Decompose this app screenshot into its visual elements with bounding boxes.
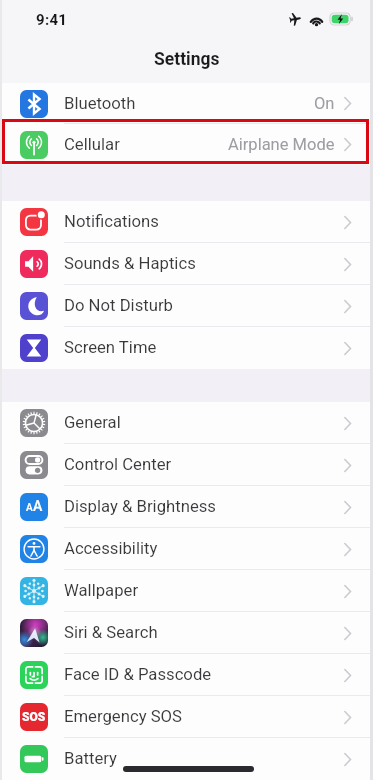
button[interactable]: Notifications: [0, 201, 373, 243]
staticText: Battery: [64, 749, 117, 769]
button[interactable]: General: [0, 402, 373, 444]
staticText: 9:41: [36, 11, 68, 29]
button[interactable]: Accessibility: [0, 528, 373, 570]
staticText: A: [33, 498, 43, 514]
staticText: On: [314, 94, 335, 113]
staticText: Airplane Mode: [228, 135, 335, 154]
button[interactable]: A: [0, 486, 373, 528]
button[interactable]: Control Center: [0, 444, 373, 486]
staticText: Emergency SOS: [64, 707, 182, 727]
staticText: Settings: [154, 49, 220, 70]
staticText: Sounds & Haptics: [64, 254, 196, 274]
staticText: Cellular: [64, 135, 120, 155]
button[interactable]: SOS: [0, 696, 373, 738]
button[interactable]: Screen Time: [0, 327, 373, 369]
button[interactable]: Battery: [0, 738, 373, 780]
staticText: Bluetooth: [64, 94, 136, 114]
staticText: SOS: [22, 710, 46, 724]
staticText: Control Center: [64, 455, 172, 475]
staticText: Accessibility: [64, 539, 158, 559]
button[interactable]: Sounds & Haptics: [0, 243, 373, 285]
staticText: Siri & Search: [64, 623, 158, 643]
button[interactable]: Cellular: [0, 124, 373, 165]
staticText: General: [64, 413, 121, 433]
staticText: Do Not Disturb: [64, 296, 173, 316]
staticText: Notifications: [64, 212, 159, 232]
button[interactable]: Wallpaper: [0, 570, 373, 612]
button[interactable]: Face ID & Passcode: [0, 654, 373, 696]
staticText: Face ID & Passcode: [64, 665, 212, 685]
button[interactable]: Do Not Disturb: [0, 285, 373, 327]
staticText: Wallpaper: [64, 581, 139, 601]
staticText: Display & Brightness: [64, 497, 216, 517]
staticText: Screen Time: [64, 338, 157, 358]
staticText: A: [26, 502, 33, 514]
button[interactable]: Siri & Search: [0, 612, 373, 654]
button[interactable]: Bluetooth: [0, 83, 373, 124]
